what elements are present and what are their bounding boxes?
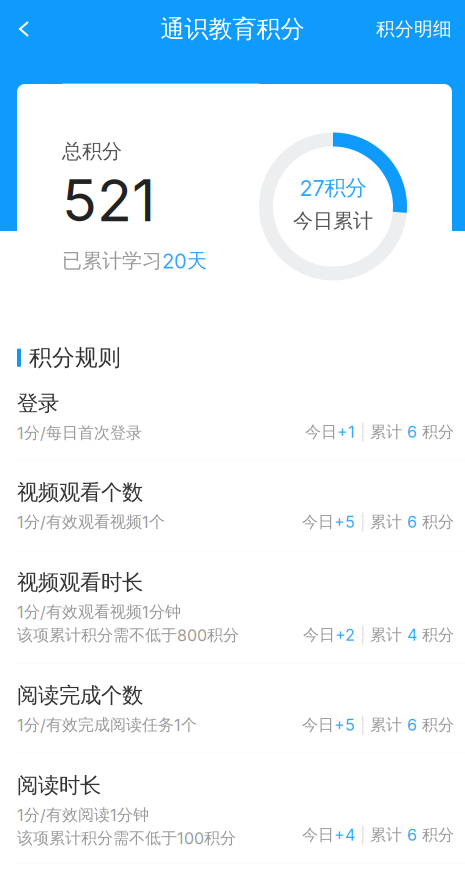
staticText: 1分/有效观看视频1分钟 bbox=[17, 602, 181, 622]
staticText: 今日 bbox=[305, 422, 337, 442]
staticText: 积分 bbox=[417, 422, 454, 442]
staticText: 积分 bbox=[417, 512, 454, 532]
staticText: 该项累计积分需不低于100积分 bbox=[17, 828, 236, 848]
staticText: 积分 bbox=[417, 825, 454, 845]
staticText: 6 bbox=[407, 825, 417, 845]
staticText: 登录 bbox=[17, 390, 59, 417]
staticText: 今日 bbox=[302, 825, 334, 845]
staticText: 积分 bbox=[417, 715, 454, 735]
staticText: +2 bbox=[335, 625, 355, 645]
staticText: 1分/每日首次登录 bbox=[17, 423, 142, 443]
staticText: 6 bbox=[407, 422, 417, 442]
staticText: 今日 bbox=[302, 715, 334, 735]
button[interactable]: 登录 bbox=[0, 372, 465, 461]
staticText: 1分/有效完成阅读任务1个 bbox=[17, 715, 197, 735]
button[interactable]: 视频观看个数 bbox=[0, 461, 465, 551]
staticText: 已累计学习 bbox=[62, 248, 162, 273]
staticText: 积分规则 bbox=[29, 343, 121, 372]
staticText: 521 bbox=[62, 166, 155, 235]
staticText: 1分/有效阅读1分钟 bbox=[17, 805, 149, 825]
staticText: +4 bbox=[334, 825, 355, 845]
staticText: +1 bbox=[337, 422, 355, 442]
staticText: 今日 bbox=[302, 512, 334, 532]
staticText: 20天 bbox=[162, 248, 207, 273]
staticText: 累计 bbox=[370, 715, 407, 735]
staticText: 1分/有效观看视频1个 bbox=[17, 512, 165, 532]
staticText: 6 bbox=[407, 715, 417, 735]
staticText: 6 bbox=[407, 512, 417, 532]
staticText: 阅读时长 bbox=[17, 772, 101, 799]
staticText: 通识教育积分 bbox=[160, 14, 304, 44]
button[interactable]: Back bbox=[0, 10, 46, 48]
button[interactable]: 视频观看时长 bbox=[0, 551, 465, 664]
staticText: | bbox=[355, 715, 370, 735]
staticText: | bbox=[355, 512, 370, 532]
staticText: | bbox=[355, 825, 370, 845]
staticText: 今日 bbox=[303, 625, 335, 645]
staticText: | bbox=[355, 625, 370, 645]
staticText: 27积分 bbox=[299, 174, 366, 201]
button[interactable]: 阅读时长 bbox=[0, 754, 465, 864]
staticText: 累计 bbox=[370, 625, 407, 645]
button[interactable]: 阅读完成个数 bbox=[0, 664, 465, 754]
staticText: 积分明细 bbox=[376, 17, 452, 41]
staticText: 积分 bbox=[417, 625, 454, 645]
staticText: 视频观看时长 bbox=[17, 569, 143, 596]
button[interactable]: 积分明细 bbox=[376, 7, 465, 51]
staticText: 视频观看个数 bbox=[17, 479, 143, 506]
staticText: 今日累计 bbox=[293, 208, 373, 233]
staticText: 4 bbox=[407, 625, 417, 645]
staticText: | bbox=[355, 422, 370, 442]
staticText: 累计 bbox=[370, 422, 407, 442]
staticText: 累计 bbox=[370, 825, 407, 845]
staticText: 该项累计积分需不低于800积分 bbox=[17, 625, 239, 645]
staticText: +5 bbox=[334, 715, 355, 735]
staticText: 累计 bbox=[370, 512, 407, 532]
staticText: 总积分 bbox=[62, 139, 122, 164]
staticText: +5 bbox=[334, 512, 355, 532]
staticText: 阅读完成个数 bbox=[17, 682, 143, 709]
